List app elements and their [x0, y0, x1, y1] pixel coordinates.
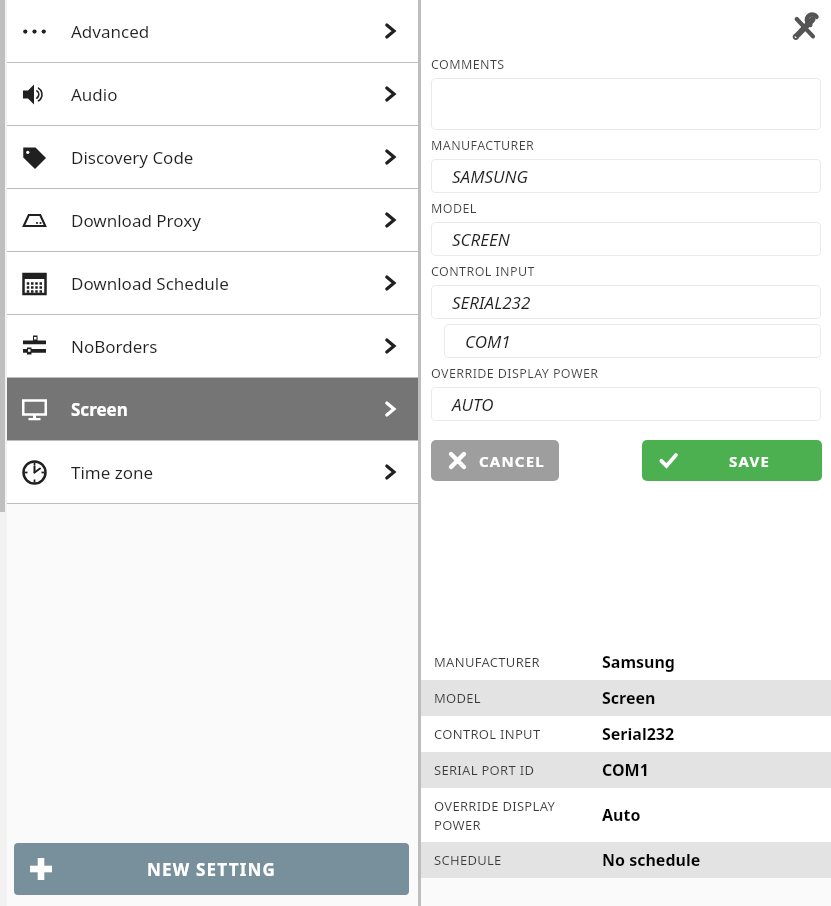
staticText: Serial232 [602, 723, 675, 745]
staticText: Auto [602, 804, 641, 826]
staticText: CONTROL INPUT [434, 725, 602, 743]
button[interactable]: SCREEN [431, 222, 821, 256]
staticText: SERIAL PORT ID [434, 761, 602, 779]
staticText: Screen [602, 687, 656, 709]
button[interactable]: Download Schedule [0, 252, 418, 314]
staticText: Download Proxy [71, 209, 201, 232]
staticText: MANUFACTURER [434, 653, 602, 671]
staticText: SERIAL232 [452, 291, 531, 314]
button[interactable]: AUTO [431, 387, 821, 421]
staticText: MODEL [431, 200, 477, 217]
staticText: OVERRIDE DISPLAY POWER [434, 797, 602, 834]
staticText: Discovery Code [71, 146, 194, 169]
staticText: No schedule [602, 849, 701, 871]
staticText: Samsung [602, 651, 675, 673]
staticText: Audio [71, 83, 118, 106]
staticText: Download Schedule [71, 272, 229, 295]
button[interactable]: Advanced [0, 0, 418, 62]
button[interactable]: COM1 [444, 324, 821, 358]
staticText: SCREEN [452, 228, 510, 251]
staticText: NoBorders [71, 335, 158, 358]
button[interactable]: Discovery Code [0, 126, 418, 188]
staticText: SAMSUNG [452, 165, 529, 188]
staticText: Screen [71, 398, 128, 421]
button[interactable]: MANUFACTURER [421, 644, 831, 680]
staticText: MODEL [434, 689, 602, 707]
staticText: COM1 [465, 330, 511, 353]
staticText: NEW SETTING [147, 858, 276, 881]
button[interactable]: NoBorders [0, 315, 418, 377]
button[interactable]: SAMSUNG [431, 159, 821, 193]
staticText: MANUFACTURER [431, 137, 535, 154]
button[interactable]: Screen [0, 378, 418, 440]
staticText: SAVE [729, 451, 770, 471]
staticText: Advanced [71, 20, 150, 43]
button[interactable]: SERIAL PORT ID [421, 752, 831, 788]
staticText: COM1 [602, 759, 649, 781]
button[interactable]: SERIAL232 [431, 285, 821, 319]
button[interactable]: NEW SETTING [14, 843, 409, 895]
button[interactable]: MODEL [421, 680, 831, 716]
staticText: CANCEL [479, 451, 545, 471]
button[interactable]: SCHEDULE [421, 842, 831, 878]
button[interactable]: CONTROL INPUT [421, 716, 831, 752]
button[interactable]: Download Proxy [0, 189, 418, 251]
staticText: OVERRIDE DISPLAY POWER [431, 365, 599, 382]
staticText: CONTROL INPUT [431, 263, 535, 280]
staticText: COMMENTS [431, 56, 505, 73]
staticText: SCHEDULE [434, 851, 602, 869]
button[interactable]: Audio [0, 63, 418, 125]
button[interactable]: CANCEL [431, 440, 559, 481]
button[interactable] [431, 78, 821, 130]
staticText: Time zone [71, 461, 154, 484]
button[interactable]: OVERRIDE DISPLAY POWER [421, 788, 831, 842]
staticText: AUTO [452, 393, 494, 416]
button[interactable]: SAVE [642, 440, 822, 481]
button[interactable]: Tools [783, 7, 825, 49]
button[interactable]: Time zone [0, 441, 418, 503]
